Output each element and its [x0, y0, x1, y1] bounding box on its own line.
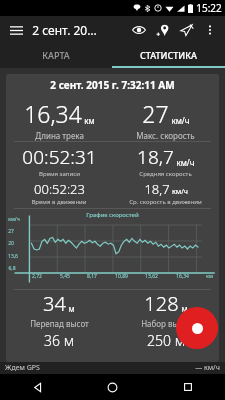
button[interactable]: км/ч — [6, 209, 219, 289]
button[interactable]: Home — [75, 374, 150, 400]
staticText: Макс. скорость — [136, 130, 195, 141]
staticText: 36 м — [44, 331, 74, 350]
staticText: СТАТИСТИКА — [140, 49, 197, 61]
staticText: 10,89 — [115, 273, 128, 280]
button[interactable]: 00:52:31 — [6, 144, 112, 206]
button[interactable]: СТАТИСТИКА — [112, 44, 225, 66]
staticText: 8,17 — [87, 273, 97, 280]
staticText: км/ч — [172, 187, 188, 197]
staticText: Ср. скорость в движении — [129, 198, 202, 206]
staticText: 16,34 — [24, 98, 82, 129]
button[interactable]: 27 — [112, 98, 219, 141]
staticText: Набор высот — [141, 318, 191, 329]
staticText: 6,8 — [8, 265, 16, 272]
staticText: 5,45 — [60, 273, 70, 280]
staticText: км/ч — [176, 157, 195, 168]
staticText: — км/ч — [195, 363, 220, 373]
staticText: 27 — [8, 228, 14, 235]
staticText: Перепад высот — [30, 318, 89, 329]
button[interactable]: Add place — [153, 20, 173, 40]
staticText: м — [181, 303, 188, 314]
staticText: График скоростей — [86, 211, 139, 219]
staticText: км — [206, 273, 213, 280]
staticText: км — [84, 115, 95, 126]
staticText: 27 — [142, 98, 169, 129]
staticText: 16,34 — [176, 273, 189, 280]
staticText: 13,6 — [8, 253, 18, 260]
button[interactable]: 128 — [112, 290, 219, 350]
staticText: км/ч — [8, 216, 20, 223]
staticText: м — [68, 303, 75, 314]
staticText: 2 сент. 2015 г. 7:32:11 AM — [50, 78, 175, 92]
button[interactable]: 18,7 — [112, 144, 219, 206]
staticText: Время записи — [39, 170, 80, 178]
button[interactable]: Recents — [150, 374, 225, 400]
button[interactable]: 34 — [6, 290, 112, 350]
staticText: Длина трека — [35, 130, 84, 141]
staticText: 250 м — [147, 331, 185, 350]
button[interactable]: More options — [201, 21, 219, 39]
staticText: 2 сент. 20… — [32, 22, 97, 38]
staticText: 00:52:31 — [22, 144, 97, 170]
button[interactable]: Record — [176, 307, 218, 349]
button[interactable]: 16,34 — [6, 98, 112, 141]
staticText: 20 — [8, 240, 14, 247]
staticText: 15:22 — [196, 1, 222, 15]
staticText: км/ч — [171, 115, 190, 126]
staticText: КАРТА — [42, 49, 70, 61]
staticText: Время в движении — [31, 198, 87, 206]
staticText: 18,7 — [144, 180, 170, 198]
staticText: 128 — [144, 290, 179, 317]
button[interactable]: Visibility — [129, 20, 149, 40]
staticText: 2,72 — [32, 273, 42, 280]
button[interactable]: Share — [177, 20, 197, 40]
button[interactable]: Menu — [6, 20, 26, 40]
button[interactable]: Back — [0, 374, 75, 400]
staticText: 00:52:23 — [34, 180, 85, 198]
staticText: 13,62 — [145, 273, 158, 280]
staticText: Средняя скорость — [139, 170, 192, 178]
staticText: Ждем GPS — [5, 363, 40, 373]
staticText: 34 — [43, 290, 66, 317]
button[interactable]: КАРТА — [0, 44, 112, 66]
staticText: 18,7 — [137, 144, 174, 170]
